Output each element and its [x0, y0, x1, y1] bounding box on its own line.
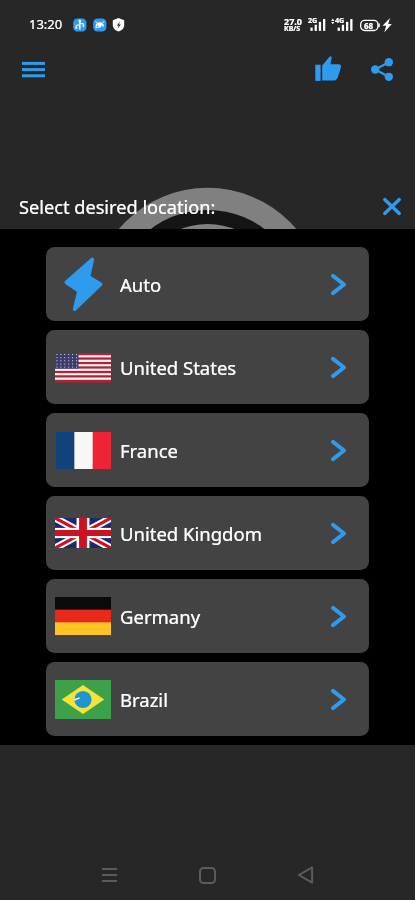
button[interactable]: Share [364, 51, 400, 87]
staticText: 68 [364, 20, 374, 31]
staticText: 13:20 [29, 15, 63, 33]
staticText: United Kingdom [120, 521, 262, 546]
button[interactable]: United States [46, 330, 369, 404]
button[interactable]: Menu [14, 51, 52, 89]
staticText: 4G [335, 15, 345, 25]
button[interactable]: Back [282, 852, 328, 898]
staticText: Select desired location: [19, 195, 216, 220]
button[interactable]: Auto [46, 247, 369, 321]
staticText: France [120, 438, 178, 463]
staticText: Germany [120, 604, 201, 629]
staticText: United States [120, 355, 237, 380]
button[interactable]: Brazil [46, 662, 369, 736]
staticText: 27.0 [284, 15, 302, 27]
button[interactable]: Recents [86, 852, 132, 898]
staticText: Auto [120, 272, 162, 297]
button[interactable]: Like [310, 50, 346, 86]
staticText: Brazil [120, 687, 168, 712]
button[interactable]: France [46, 413, 369, 487]
button[interactable]: Germany [46, 579, 369, 653]
button[interactable]: United Kingdom [46, 496, 369, 570]
staticText: KB/S [284, 24, 301, 34]
button[interactable]: Home [184, 852, 230, 898]
staticText: 2G [308, 15, 318, 25]
button[interactable]: Close [373, 187, 411, 225]
